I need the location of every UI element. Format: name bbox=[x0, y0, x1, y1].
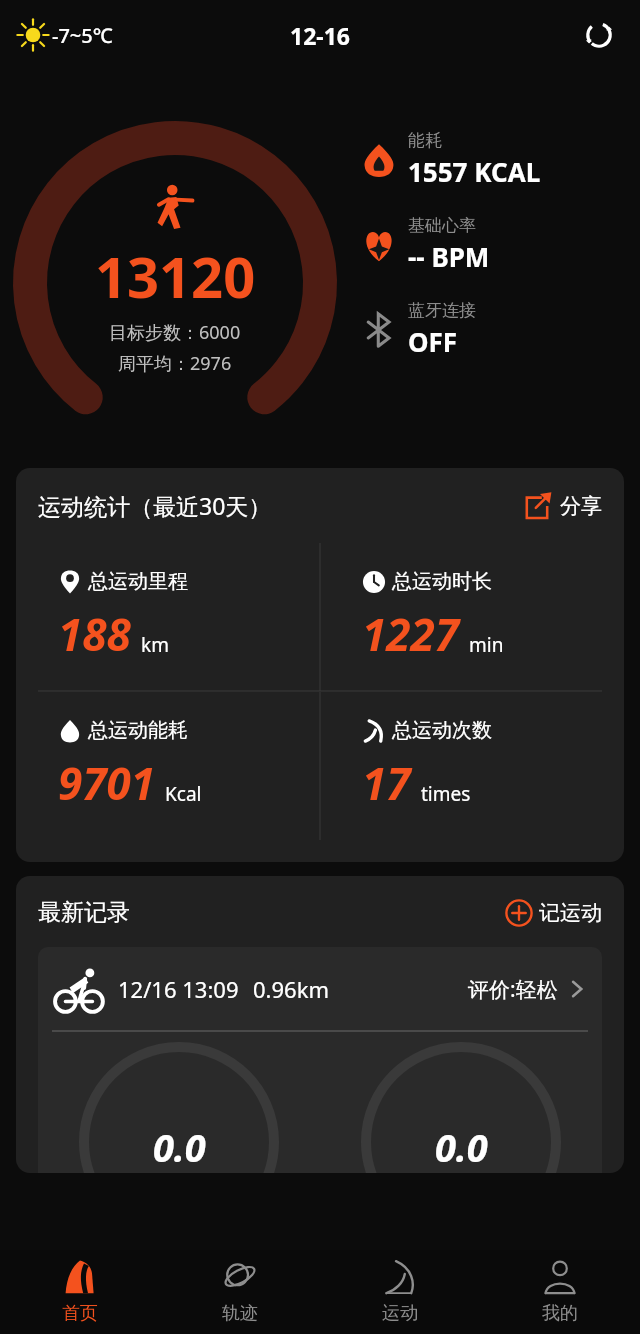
staticText: 运动 bbox=[382, 1302, 418, 1325]
staticText: min bbox=[469, 632, 504, 658]
staticText: 运动统计（最近30天） bbox=[38, 490, 272, 521]
staticText: OFF bbox=[408, 324, 458, 359]
staticText: 首页 bbox=[62, 1302, 98, 1325]
staticText: 评价:轻松 bbox=[468, 975, 558, 1004]
staticText: 0.0 bbox=[435, 1121, 488, 1173]
button[interactable]: -7~5℃ bbox=[16, 18, 113, 52]
staticText: 总运动时长 bbox=[392, 569, 492, 594]
button[interactable]: 总运动时长 bbox=[320, 543, 624, 691]
staticText: 周平均：2976 bbox=[118, 351, 232, 376]
staticText: 基础心率 bbox=[408, 215, 476, 236]
button[interactable]: 12/16 13:09 bbox=[38, 947, 602, 1173]
staticText: 0.0 bbox=[153, 1121, 206, 1173]
staticText: km bbox=[141, 632, 169, 658]
staticText: 0.96km bbox=[253, 974, 329, 1004]
staticText: 轨迹 bbox=[222, 1302, 258, 1325]
staticText: 17 bbox=[362, 753, 411, 813]
staticText: 目标步数：6000 bbox=[109, 320, 241, 345]
button[interactable]: 我的 bbox=[480, 1250, 640, 1334]
staticText: 总运动里程 bbox=[88, 569, 188, 594]
staticText: Kcal bbox=[165, 781, 202, 807]
staticText: 我的 bbox=[542, 1302, 578, 1325]
button[interactable]: 能耗 bbox=[350, 130, 632, 189]
staticText: times bbox=[421, 781, 471, 807]
staticText: 记运动 bbox=[539, 900, 602, 926]
staticText: -7~5℃ bbox=[52, 22, 113, 49]
button[interactable]: 运动 bbox=[320, 1250, 480, 1334]
staticText: 总运动次数 bbox=[392, 718, 492, 743]
staticText: 1557 KCAL bbox=[408, 154, 541, 189]
staticText: 1227 bbox=[362, 604, 459, 664]
staticText: 188 bbox=[58, 604, 131, 664]
staticText: 9701 bbox=[58, 753, 155, 813]
button[interactable]: 轨迹 bbox=[160, 1250, 320, 1334]
staticText: 总运动能耗 bbox=[88, 718, 188, 743]
staticText: 蓝牙连接 bbox=[408, 300, 476, 321]
staticText: 12/16 13:09 bbox=[118, 974, 239, 1004]
button[interactable]: 分享 bbox=[522, 491, 602, 521]
staticText: 能耗 bbox=[408, 130, 442, 151]
staticText: 最新记录 bbox=[38, 898, 130, 927]
staticText: 13120 bbox=[95, 238, 256, 314]
button[interactable]: Refresh bbox=[576, 12, 622, 58]
staticText: 12-16 bbox=[290, 20, 350, 51]
staticText: 分享 bbox=[560, 493, 602, 519]
button[interactable]: 总运动能耗 bbox=[16, 692, 320, 840]
button[interactable]: 总运动次数 bbox=[320, 692, 624, 840]
button[interactable]: 总运动里程 bbox=[16, 543, 320, 691]
button[interactable]: 基础心率 bbox=[350, 215, 632, 274]
button[interactable]: 蓝牙连接 bbox=[350, 300, 632, 359]
button[interactable]: 首页 bbox=[0, 1250, 160, 1334]
button[interactable]: 13120 bbox=[0, 116, 350, 416]
staticText: -- BPM bbox=[408, 239, 490, 274]
button[interactable]: 记运动 bbox=[505, 899, 602, 927]
